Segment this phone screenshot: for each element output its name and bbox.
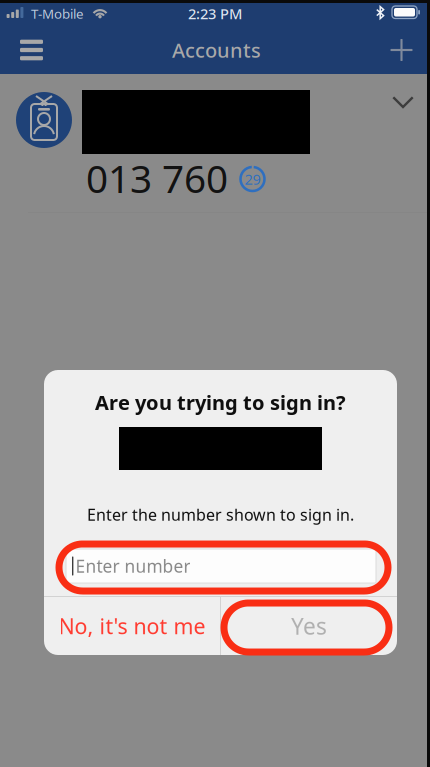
staticText: Yes [291,611,327,641]
button[interactable]: Yes [221,597,397,655]
button[interactable]: No, it's not me [44,597,220,655]
staticText: Enter the number shown to sign in. [87,504,354,525]
staticText: No, it's not me [58,612,205,640]
staticText: Are you trying to sign in? [95,389,346,416]
staticText: T-Mobile [31,5,84,22]
button[interactable]: Menu [0,26,54,74]
staticText: Accounts [172,37,261,63]
staticText: 013 760 [86,152,228,204]
button[interactable]: Add account [379,26,430,74]
staticText: 2:23 PM [188,4,242,23]
staticText: 29 [244,169,260,189]
button[interactable]: 013 760 [0,74,430,210]
staticText: Enter number [75,554,190,577]
